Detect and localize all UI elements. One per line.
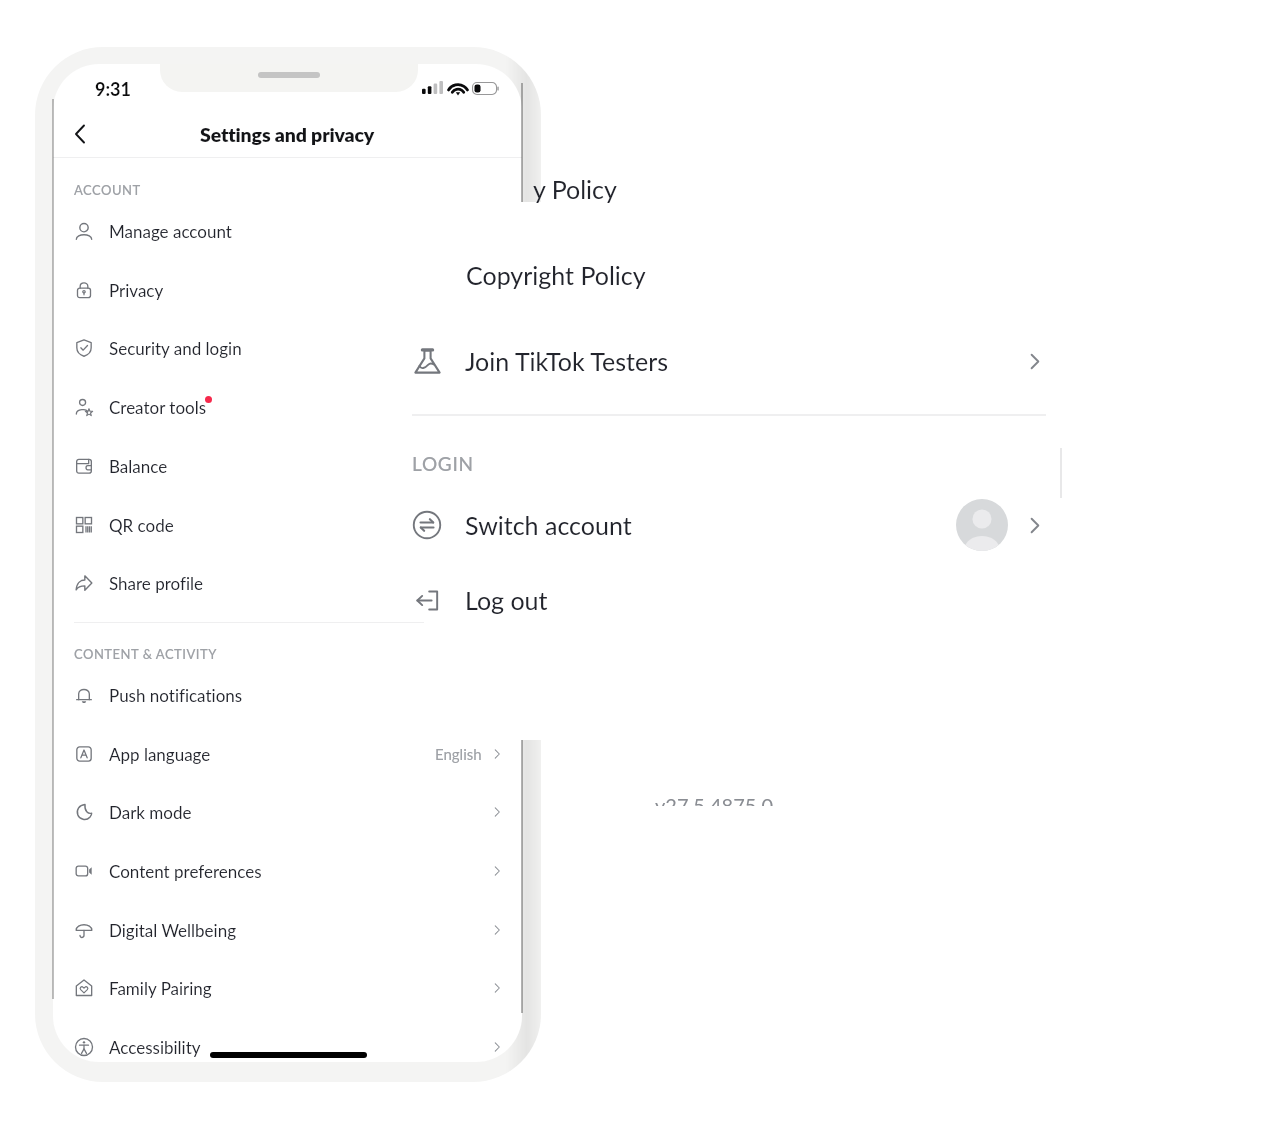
button[interactable]: App language bbox=[53, 724, 522, 783]
staticText: Security and login bbox=[109, 338, 242, 358]
button[interactable]: Share profile bbox=[53, 553, 522, 612]
staticText: Accessibility bbox=[109, 1037, 201, 1057]
staticText: QR code bbox=[109, 515, 174, 535]
button[interactable]: Back bbox=[53, 110, 107, 158]
staticText: Copyright Policy bbox=[466, 260, 646, 290]
button[interactable]: Digital Wellbeing bbox=[53, 900, 522, 959]
button[interactable]: Privacy bbox=[53, 260, 522, 319]
staticText: LOGIN bbox=[412, 452, 474, 475]
staticText: Log out bbox=[465, 585, 548, 615]
staticText: ACCOUNT bbox=[74, 182, 141, 198]
staticText: English bbox=[435, 745, 482, 763]
staticText: Content preferences bbox=[109, 861, 262, 881]
staticText: Switch account bbox=[465, 510, 632, 540]
button[interactable]: Accessibility bbox=[53, 1017, 522, 1062]
button[interactable]: y Policy bbox=[412, 164, 1046, 212]
staticText: Privacy bbox=[109, 280, 164, 300]
button[interactable]: Push notifications bbox=[53, 665, 522, 724]
staticText: Family Pairing bbox=[109, 978, 212, 998]
button[interactable]: Switch account bbox=[412, 498, 1046, 552]
button[interactable]: Creator tools bbox=[53, 377, 522, 436]
button[interactable]: Balance bbox=[53, 436, 522, 495]
staticText: Digital Wellbeing bbox=[109, 920, 236, 940]
staticText: Settings and privacy bbox=[200, 123, 375, 146]
staticText: Dark mode bbox=[109, 802, 192, 822]
button[interactable]: Family Pairing bbox=[53, 958, 522, 1017]
staticText: 9:31 bbox=[95, 78, 131, 100]
staticText: v27.5 4875 0 bbox=[655, 793, 774, 817]
button[interactable]: Dark mode bbox=[53, 782, 522, 841]
button[interactable]: QR code bbox=[53, 495, 522, 554]
button[interactable]: Log out bbox=[413, 573, 813, 627]
staticText: Manage account bbox=[109, 221, 232, 241]
staticText: y Policy bbox=[533, 174, 617, 204]
staticText: Creator tools bbox=[109, 397, 207, 417]
button[interactable]: Copyright Policy bbox=[412, 250, 1046, 298]
staticText: Balance bbox=[109, 456, 168, 476]
staticText: Push notifications bbox=[109, 685, 243, 705]
staticText: CONTENT & ACTIVITY bbox=[74, 646, 217, 662]
button[interactable]: Security and login bbox=[53, 318, 522, 377]
button[interactable]: Join TikTok Testers bbox=[412, 334, 1046, 388]
staticText: Join TikTok Testers bbox=[465, 346, 668, 376]
staticText: App language bbox=[109, 744, 211, 764]
button[interactable]: Manage account bbox=[53, 201, 522, 260]
button[interactable]: Content preferences bbox=[53, 841, 522, 900]
staticText: Share profile bbox=[109, 573, 204, 593]
